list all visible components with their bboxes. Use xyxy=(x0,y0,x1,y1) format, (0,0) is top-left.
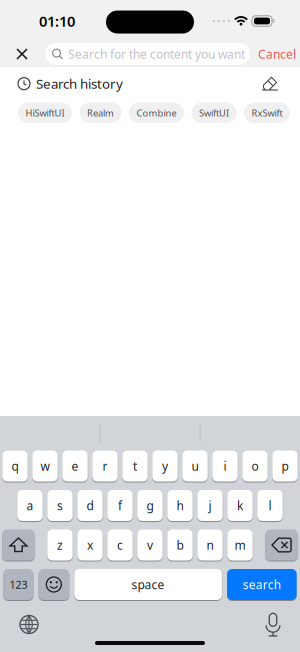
button[interactable]: search xyxy=(227,569,297,600)
button[interactable]: n xyxy=(197,529,223,560)
staticText: h xyxy=(176,497,183,513)
button[interactable]: Emoji xyxy=(39,569,69,600)
button[interactable]: Combine xyxy=(129,102,184,123)
staticText: s xyxy=(57,497,63,513)
button[interactable]: u xyxy=(182,450,208,481)
button[interactable]: r xyxy=(92,450,118,481)
button[interactable]: space xyxy=(74,569,222,600)
button[interactable]: l xyxy=(257,490,283,521)
staticText: e xyxy=(71,458,78,474)
button[interactable]: Cancel xyxy=(250,46,300,62)
button[interactable]: q xyxy=(2,450,28,481)
button[interactable]: x xyxy=(77,529,103,560)
button[interactable]: w xyxy=(32,450,58,481)
button[interactable]: p xyxy=(272,450,298,481)
staticText: space xyxy=(132,576,165,592)
button[interactable]: Next keyboard xyxy=(9,604,49,644)
staticText: a xyxy=(26,497,33,513)
staticText: RxSwift xyxy=(251,107,282,119)
button[interactable]: v xyxy=(137,529,163,560)
staticText: k xyxy=(237,497,243,513)
staticText: p xyxy=(281,458,288,474)
staticText: l xyxy=(268,497,271,513)
staticText: m xyxy=(234,537,245,553)
button[interactable]: o xyxy=(242,450,268,481)
button[interactable]: m xyxy=(227,529,253,560)
button[interactable]: Clear search history xyxy=(262,77,278,91)
staticText: v xyxy=(147,537,153,553)
button[interactable]: f xyxy=(107,490,133,521)
staticText: search xyxy=(243,576,281,592)
staticText: o xyxy=(251,458,258,474)
button[interactable]: h xyxy=(167,490,193,521)
button[interactable]: k xyxy=(227,490,253,521)
button[interactable]: e xyxy=(62,450,88,481)
staticText: q xyxy=(11,458,18,474)
staticText: Cancel xyxy=(258,46,296,62)
button[interactable]: g xyxy=(137,490,163,521)
button[interactable]: t xyxy=(122,450,148,481)
button[interactable]: c xyxy=(107,529,133,560)
button[interactable]: Shift xyxy=(2,529,35,560)
button[interactable]: Realm xyxy=(79,102,121,123)
button[interactable]: Search field xyxy=(45,43,250,65)
button[interactable]: Delete xyxy=(265,529,298,560)
staticText: f xyxy=(118,497,122,513)
staticText: b xyxy=(176,537,183,553)
staticText: y xyxy=(162,458,168,474)
staticText: z xyxy=(57,537,63,553)
staticText: g xyxy=(146,497,153,513)
button[interactable]: b xyxy=(167,529,193,560)
staticText: 01:10 xyxy=(39,11,75,31)
staticText: HiSwiftUI xyxy=(25,107,64,119)
button[interactable]: y xyxy=(152,450,178,481)
staticText: Search history xyxy=(36,75,123,92)
button[interactable]: RxSwift xyxy=(244,102,290,123)
staticText: w xyxy=(40,458,49,474)
staticText: i xyxy=(223,458,226,474)
button[interactable]: Numbers xyxy=(3,569,33,600)
staticText: 123 xyxy=(9,577,27,592)
button[interactable]: HiSwiftUI xyxy=(18,102,72,123)
button[interactable]: Dictation xyxy=(253,604,293,644)
button[interactable]: a xyxy=(17,490,43,521)
staticText: d xyxy=(86,497,93,513)
button[interactable]: SwiftUI xyxy=(191,102,236,123)
staticText: c xyxy=(117,537,123,553)
button[interactable]: d xyxy=(77,490,103,521)
button[interactable]: j xyxy=(197,490,223,521)
button[interactable]: s xyxy=(47,490,73,521)
button[interactable]: Close xyxy=(0,42,45,66)
staticText: n xyxy=(206,537,213,553)
staticText: j xyxy=(208,497,211,513)
staticText: t xyxy=(133,458,137,474)
staticText: u xyxy=(191,458,198,474)
button[interactable]: z xyxy=(47,529,73,560)
staticText: Combine xyxy=(136,107,176,119)
staticText: SwiftUI xyxy=(199,107,229,119)
staticText: x xyxy=(87,537,93,553)
staticText: r xyxy=(102,458,107,474)
staticText: Search for the content you want xyxy=(68,46,245,62)
button[interactable]: i xyxy=(212,450,238,481)
staticText: Realm xyxy=(87,107,114,119)
